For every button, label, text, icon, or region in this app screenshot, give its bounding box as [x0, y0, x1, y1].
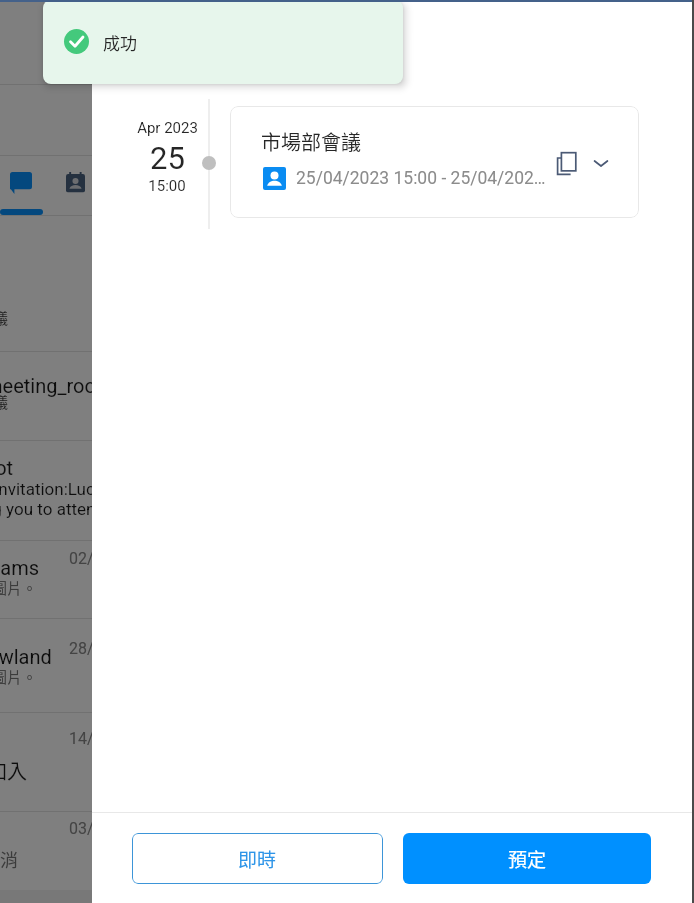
- staticText: Ada Williams: [0, 556, 40, 579]
- staticText: 您已取消: [0, 846, 18, 872]
- staticText: 部門會議: [0, 307, 9, 329]
- staticText: 25: [150, 140, 185, 176]
- staticText: 15:00: [148, 177, 186, 195]
- staticText: 14/: [69, 729, 92, 748]
- button[interactable]: 市場部會議: [230, 106, 639, 218]
- staticText: Anna Rowland: [0, 645, 52, 668]
- staticText: chatbot: [0, 456, 14, 479]
- staticText: meeting_room: [0, 374, 92, 397]
- staticText: 即時: [238, 845, 277, 873]
- staticText: 你傳送了圖片。: [0, 666, 38, 688]
- staticText: Meeting Invitation:Luc: [0, 479, 92, 499]
- staticText: 市場部會議: [261, 127, 361, 156]
- staticText: 成功: [103, 30, 137, 55]
- staticText: 預定: [508, 845, 547, 873]
- staticText: 邀請您加入: [0, 756, 27, 785]
- button[interactable]: 即時: [132, 833, 383, 884]
- staticText: y is inviting you to atten: [0, 499, 92, 519]
- staticText: 02/: [69, 549, 92, 568]
- staticText: 03/: [69, 819, 92, 838]
- button[interactable]: Expand: [588, 150, 614, 176]
- staticText: 你傳送了圖片。: [0, 577, 38, 599]
- staticText: 25/04/2023 15:00 - 25/04/202…: [296, 168, 546, 189]
- button[interactable]: Copy: [552, 148, 582, 178]
- staticText: 28/: [69, 639, 92, 658]
- staticText: Apr 2023: [137, 119, 198, 137]
- button[interactable]: 預定: [403, 833, 651, 884]
- staticText: 部門會議: [0, 391, 9, 413]
